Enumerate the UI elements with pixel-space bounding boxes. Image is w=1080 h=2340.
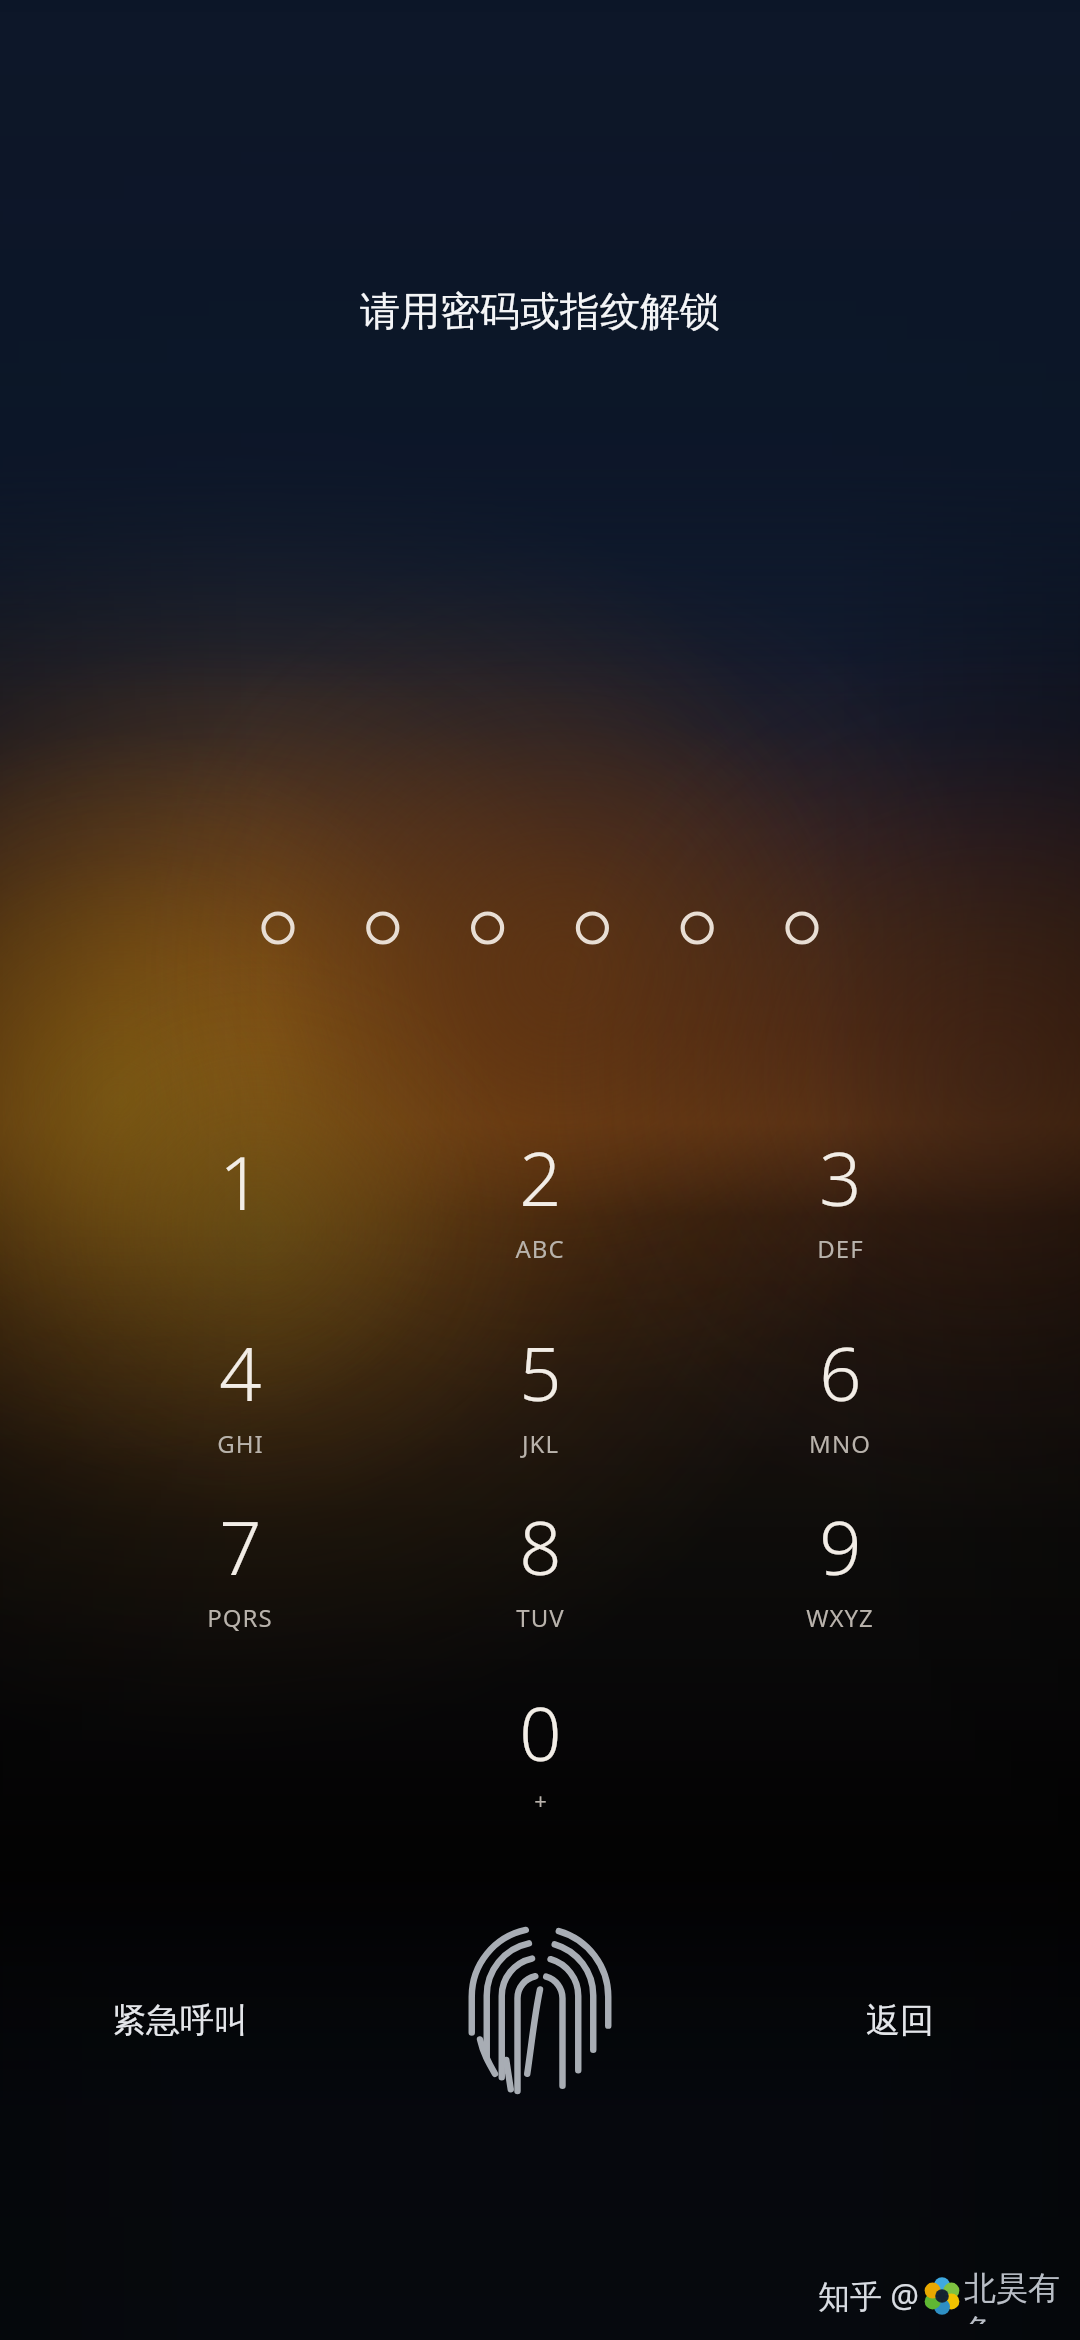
staticText: 4 xyxy=(219,1322,262,1423)
button[interactable]: 3 xyxy=(730,1116,950,1276)
staticText: TUV xyxy=(516,1601,565,1634)
button[interactable]: 5 xyxy=(430,1311,650,1471)
staticText: 2 xyxy=(519,1127,562,1228)
button[interactable]: 紧急呼叫 xyxy=(60,1975,300,2065)
staticText: MNO xyxy=(809,1427,871,1460)
staticText: 9 xyxy=(819,1496,862,1597)
button[interactable]: 9 xyxy=(730,1485,950,1645)
staticText: 6 xyxy=(819,1322,862,1423)
button[interactable]: 8 xyxy=(430,1485,650,1645)
staticText: GHI xyxy=(217,1427,264,1460)
staticText: WXYZ xyxy=(806,1601,874,1634)
button[interactable]: 0 xyxy=(430,1668,650,1828)
button[interactable]: 返回 xyxy=(780,1975,1020,2065)
staticText: + xyxy=(534,1785,548,1815)
staticText: 7 xyxy=(219,1496,262,1597)
staticText: 知乎 @ xyxy=(818,2274,920,2318)
button[interactable]: 1 xyxy=(130,1116,350,1276)
staticText: 北昊有鱼 xyxy=(964,2268,1068,2324)
button[interactable]: Unlock with fingerprint xyxy=(458,1912,622,2098)
button[interactable]: 6 xyxy=(730,1311,950,1471)
button[interactable]: 4 xyxy=(130,1311,350,1471)
staticText: 3 xyxy=(819,1127,862,1228)
staticText: 紧急呼叫 xyxy=(112,1999,248,2042)
staticText: JKL xyxy=(522,1427,559,1460)
staticText: 请用密码或指纹解锁 xyxy=(360,286,720,336)
staticText: 0 xyxy=(519,1682,562,1783)
staticText: 返回 xyxy=(866,1999,934,2042)
staticText: ABC xyxy=(515,1232,565,1265)
button[interactable]: 7 xyxy=(130,1485,350,1645)
staticText: 5 xyxy=(519,1322,562,1423)
staticText: PQRS xyxy=(207,1601,273,1634)
staticText: DEF xyxy=(817,1232,864,1265)
button[interactable]: 2 xyxy=(430,1116,650,1276)
staticText: 1 xyxy=(219,1131,262,1232)
staticText: 8 xyxy=(519,1496,562,1597)
